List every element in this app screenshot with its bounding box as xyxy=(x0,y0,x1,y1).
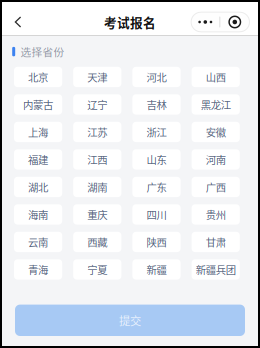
staticText: 青海 xyxy=(28,262,48,277)
staticText: 河北 xyxy=(146,69,166,84)
staticText: 江西 xyxy=(87,152,107,167)
button[interactable]: 北京 xyxy=(14,67,62,87)
button[interactable]: 广西 xyxy=(192,177,240,197)
button[interactable]: 福建 xyxy=(14,149,62,170)
staticText: 河南 xyxy=(206,152,226,167)
staticText: 提交 xyxy=(119,312,141,328)
staticText: 山东 xyxy=(146,152,166,167)
button[interactable]: 提交 xyxy=(15,305,245,336)
staticText: 重庆 xyxy=(87,207,107,222)
button[interactable]: 上海 xyxy=(14,122,62,142)
staticText: 贵州 xyxy=(206,207,226,222)
button[interactable]: 云南 xyxy=(14,232,62,252)
button[interactable]: 山东 xyxy=(132,149,181,170)
button[interactable]: 甘肃 xyxy=(192,232,240,252)
button[interactable]: 重庆 xyxy=(73,204,121,225)
button[interactable]: 新疆 xyxy=(132,259,181,280)
staticText: 湖北 xyxy=(28,179,48,194)
button[interactable]: 黑龙江 xyxy=(192,94,240,115)
button[interactable]: 贵州 xyxy=(192,204,240,225)
staticText: 宁夏 xyxy=(87,262,107,277)
staticText: 福建 xyxy=(28,152,48,167)
staticText: 内蒙古 xyxy=(23,97,53,112)
staticText: 海南 xyxy=(28,207,48,222)
button[interactable]: 西藏 xyxy=(73,232,121,252)
button[interactable]: 青海 xyxy=(14,259,62,280)
staticText: 北京 xyxy=(28,69,48,84)
button[interactable]: 湖北 xyxy=(14,177,62,197)
staticText: 云南 xyxy=(28,234,48,249)
button[interactable]: 吉林 xyxy=(132,94,181,115)
button[interactable]: Back xyxy=(7,9,29,35)
staticText: 湖南 xyxy=(87,179,107,194)
button[interactable]: 河北 xyxy=(132,67,181,87)
button[interactable]: 江西 xyxy=(73,149,121,170)
button[interactable]: 内蒙古 xyxy=(14,94,62,115)
staticText: 考试报名 xyxy=(104,13,156,31)
button[interactable]: 湖南 xyxy=(73,177,121,197)
button[interactable]: 河南 xyxy=(192,149,240,170)
button[interactable]: 江苏 xyxy=(73,122,121,142)
staticText: 浙江 xyxy=(146,124,166,139)
staticText: 选择省份 xyxy=(20,44,64,59)
staticText: 甘肃 xyxy=(206,234,226,249)
staticText: 广东 xyxy=(146,179,166,194)
button[interactable]: 天津 xyxy=(73,67,121,87)
staticText: 西藏 xyxy=(87,234,107,249)
staticText: 吉林 xyxy=(146,97,166,112)
staticText: 江苏 xyxy=(87,124,107,139)
staticText: 黑龙江 xyxy=(201,97,231,112)
staticText: 上海 xyxy=(28,124,48,139)
button[interactable]: 辽宁 xyxy=(73,94,121,115)
button[interactable]: 安徽 xyxy=(192,122,240,142)
button[interactable]: 海南 xyxy=(14,204,62,225)
staticText: 天津 xyxy=(87,69,107,84)
button[interactable]: More options xyxy=(191,12,249,32)
button[interactable]: 广东 xyxy=(132,177,181,197)
button[interactable]: 宁夏 xyxy=(73,259,121,280)
button[interactable]: 陕西 xyxy=(132,232,181,252)
staticText: 广西 xyxy=(206,179,226,194)
button[interactable]: 四川 xyxy=(132,204,181,225)
staticText: 新疆兵团 xyxy=(196,262,236,277)
staticText: 四川 xyxy=(146,207,166,222)
staticText: 安徽 xyxy=(206,124,226,139)
staticText: 新疆 xyxy=(146,262,166,277)
staticText: 山西 xyxy=(206,69,226,84)
button[interactable]: 新疆兵团 xyxy=(192,259,240,280)
button[interactable]: 山西 xyxy=(192,67,240,87)
staticText: 陕西 xyxy=(146,234,166,249)
staticText: 辽宁 xyxy=(87,97,107,112)
button[interactable]: 浙江 xyxy=(132,122,181,142)
